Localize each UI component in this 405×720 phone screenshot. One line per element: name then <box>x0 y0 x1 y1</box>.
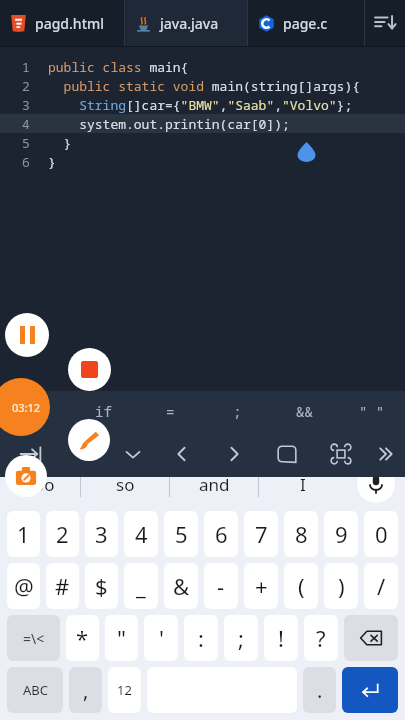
staticText: } <box>48 134 72 152</box>
staticText: } <box>48 153 56 171</box>
staticText: 9 <box>335 519 348 549</box>
button[interactable]: & <box>164 563 198 609</box>
button[interactable]: java.java <box>125 0 247 46</box>
staticText: . <box>317 677 323 704</box>
button[interactable]: Command <box>314 431 368 477</box>
button[interactable]: page.c <box>248 0 364 46</box>
button[interactable]: ; <box>224 615 258 661</box>
staticText: 1 <box>17 519 30 549</box>
staticText: public static void main(string[]args){ <box>48 77 360 95</box>
button[interactable]: Next <box>208 431 260 477</box>
button[interactable]: Tab <box>0 431 62 477</box>
button[interactable]: AI assistant <box>260 431 314 477</box>
button[interactable]: I <box>259 460 347 508</box>
staticText: and <box>199 473 230 496</box>
staticText: 4 <box>135 519 148 549</box>
staticText: & <box>173 571 190 601</box>
button[interactable]: _ <box>124 563 158 609</box>
button[interactable]: 0 <box>364 511 398 557</box>
button[interactable]: " " <box>338 391 405 431</box>
button[interactable]: - <box>204 563 238 609</box>
button[interactable]: 12 <box>108 667 141 713</box>
button[interactable]: ! <box>264 615 298 661</box>
staticText: 3 <box>95 519 108 549</box>
button[interactable]: 1 <box>7 511 40 557</box>
staticText: 2 <box>22 77 30 95</box>
button[interactable]: 4 <box>124 511 158 557</box>
staticText: ) <box>338 571 345 601</box>
button[interactable]: =\< <box>7 615 60 661</box>
button[interactable]: / <box>364 563 398 609</box>
staticText: =\< <box>23 629 45 648</box>
button[interactable]: Backspace <box>344 615 398 661</box>
staticText: _ <box>136 571 146 601</box>
staticText: @ <box>14 571 34 601</box>
button[interactable]: . <box>303 667 336 713</box>
button[interactable]: Expand <box>110 431 156 477</box>
button[interactable]: ? <box>304 615 338 661</box>
staticText: 3 <box>22 96 30 114</box>
button[interactable]: and <box>170 460 258 508</box>
button[interactable]: ' <box>144 615 178 661</box>
staticText: system.out.printin(car[0]); <box>48 115 290 133</box>
button[interactable]: , <box>69 667 102 713</box>
staticText: 2 <box>56 519 69 549</box>
staticText: ! <box>278 623 284 653</box>
button[interactable]: oo <box>8 460 80 508</box>
staticText: / <box>377 571 386 601</box>
button[interactable]: 6 <box>204 511 238 557</box>
staticText: pagd.html <box>35 14 105 33</box>
button[interactable]: @ <box>7 563 40 609</box>
button[interactable]: Brush tool <box>68 419 110 461</box>
staticText: , <box>83 677 89 704</box>
button[interactable]: : <box>184 615 218 661</box>
staticText: so <box>116 473 135 496</box>
button[interactable]: 03:12 <box>0 378 50 436</box>
button[interactable]: 2 <box>46 511 79 557</box>
button[interactable]: ) <box>324 563 358 609</box>
button[interactable]: && <box>271 391 338 431</box>
button[interactable]: More <box>368 431 405 477</box>
staticText: ( <box>298 571 305 601</box>
staticText: 6 <box>22 153 30 171</box>
button[interactable]: Sort <box>365 0 405 46</box>
button[interactable]: ( <box>284 563 318 609</box>
staticText: 4 <box>22 115 30 133</box>
button[interactable]: so <box>81 460 169 508</box>
staticText: java.java <box>160 14 219 33</box>
button[interactable]: Enter <box>342 667 398 713</box>
staticText: if <box>95 402 112 421</box>
staticText: + <box>255 571 268 601</box>
button[interactable]: ABC <box>7 667 63 713</box>
button[interactable]: 3 <box>85 511 118 557</box>
button[interactable]: # <box>46 563 79 609</box>
button[interactable]: Previous <box>156 431 208 477</box>
button[interactable]: 7 <box>244 511 278 557</box>
staticText: String[]car={"BMW","Saab","Volvo"}; <box>48 96 353 114</box>
staticText: 0 <box>375 519 388 549</box>
button[interactable]: " <box>105 615 138 661</box>
staticText: : <box>198 623 204 653</box>
button[interactable]: Pause recording <box>5 313 49 357</box>
button[interactable]: ; <box>204 391 271 431</box>
staticText: I <box>300 473 306 496</box>
button[interactable]: 9 <box>324 511 358 557</box>
button[interactable]: Stop recording <box>68 348 111 391</box>
button[interactable]: $ <box>85 563 118 609</box>
button[interactable]: Voice input <box>347 460 405 508</box>
button[interactable]: = <box>137 391 204 431</box>
button[interactable]: if <box>70 391 137 431</box>
button[interactable]: * <box>66 615 99 661</box>
button[interactable]: Screen capture <box>5 455 47 497</box>
button[interactable]: pagd.html <box>0 0 124 46</box>
button[interactable]: 8 <box>284 511 318 557</box>
staticText: " " <box>359 402 385 421</box>
staticText: ; <box>238 623 244 653</box>
staticText: public class main{ <box>48 58 189 76</box>
button[interactable]: + <box>244 563 278 609</box>
button[interactable]: 5 <box>164 511 198 557</box>
staticText: ABC <box>23 681 48 699</box>
staticText: 12 <box>117 681 132 699</box>
staticText: oo <box>34 473 55 496</box>
